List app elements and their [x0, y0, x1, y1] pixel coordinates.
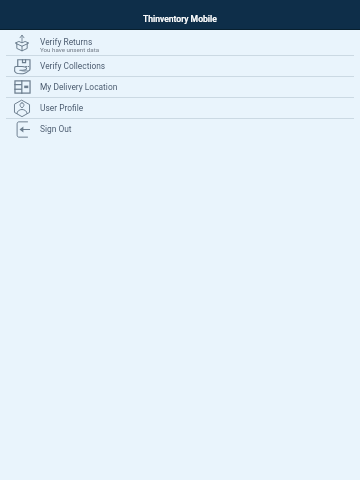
button[interactable]: Verify Collections	[0, 56, 360, 77]
button[interactable]: Verify Returns	[0, 30, 360, 56]
button[interactable]: My Delivery Location	[0, 77, 360, 98]
button[interactable]: User Profile	[0, 98, 360, 119]
button[interactable]: Sign Out	[0, 119, 360, 139]
staticText: My Delivery Location	[40, 82, 118, 92]
staticText: Sign Out	[40, 124, 72, 134]
staticText: Thinventory Mobile	[143, 14, 217, 24]
staticText: Verify Collections	[40, 61, 106, 71]
staticText: Verify Returns	[40, 37, 93, 47]
staticText: User Profile	[40, 103, 84, 113]
staticText: You have unsent data	[40, 46, 100, 53]
